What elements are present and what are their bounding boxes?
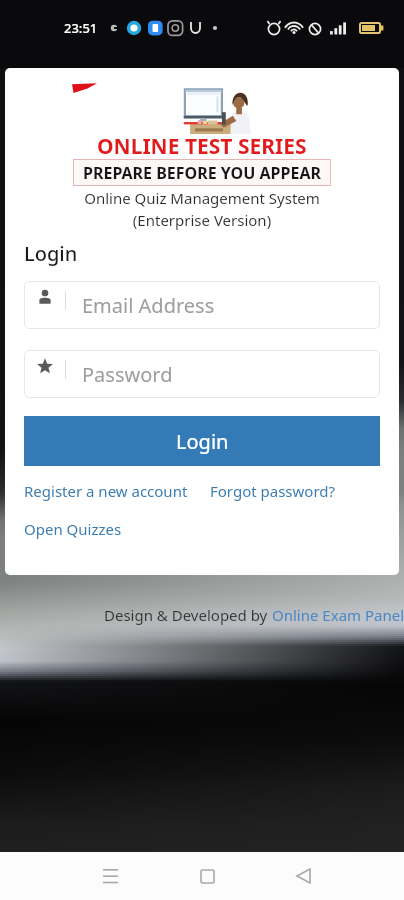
staticText: Register a new account: [24, 481, 188, 501]
staticText: Online Exam Panel: [272, 605, 404, 625]
staticText: 23:51: [64, 19, 98, 37]
staticText: Design & Developed by: [104, 605, 272, 625]
staticText: Login: [176, 428, 229, 455]
button[interactable]: Email Address: [24, 281, 380, 329]
button[interactable]: Forgot password?: [210, 481, 336, 501]
button[interactable]: Register a new account: [24, 481, 188, 501]
staticText: Email Address: [82, 292, 215, 319]
staticText: ONLINE TEST SERIES: [97, 132, 307, 161]
button[interactable]: Home: [183, 852, 231, 900]
button[interactable]: Open Quizzes: [24, 519, 122, 539]
staticText: PREPARE BEFORE YOU APPEAR: [83, 162, 321, 184]
staticText: Open Quizzes: [24, 519, 122, 539]
button[interactable]: Back: [279, 852, 327, 900]
staticText: Forgot password?: [210, 481, 336, 501]
button[interactable]: Recent apps: [86, 852, 134, 900]
button[interactable]: Login: [24, 416, 380, 466]
button[interactable]: Password: [24, 350, 380, 398]
staticText: Password: [82, 361, 173, 388]
staticText: Login: [24, 240, 78, 267]
staticText: Online Quiz Management System (Enterpris…: [84, 188, 320, 231]
